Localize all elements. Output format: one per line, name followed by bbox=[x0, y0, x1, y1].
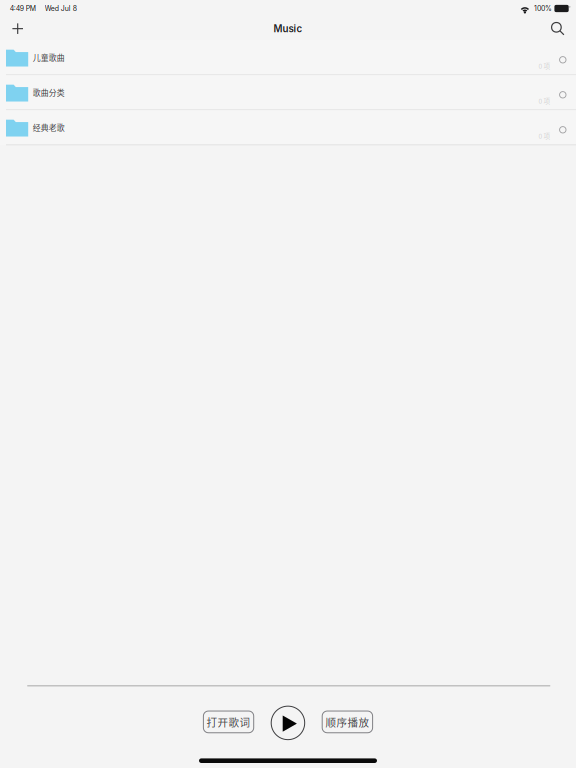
staticText: 0 项 bbox=[539, 96, 551, 106]
button[interactable]: 歌曲分类 bbox=[0, 75, 576, 109]
staticText: 100% bbox=[534, 4, 552, 13]
staticText: 0 项 bbox=[539, 131, 551, 141]
button[interactable]: 打开歌词 bbox=[203, 711, 254, 733]
staticText: 打开歌词 bbox=[207, 714, 251, 730]
staticText: 0 项 bbox=[539, 61, 551, 71]
button[interactable]: 儿童歌曲 bbox=[0, 40, 576, 74]
button[interactable]: Play bbox=[254, 705, 321, 739]
button[interactable]: Search bbox=[544, 15, 571, 42]
staticText: 经典老歌 bbox=[33, 122, 65, 133]
button[interactable]: Add bbox=[4, 15, 31, 42]
staticText: 儿童歌曲 bbox=[33, 52, 65, 63]
staticText: 4:49 PM bbox=[10, 4, 36, 13]
staticText: 顺序播放 bbox=[325, 714, 369, 730]
staticText: 歌曲分类 bbox=[33, 87, 65, 98]
button[interactable]: 顺序播放 bbox=[322, 711, 373, 733]
staticText: Music bbox=[273, 23, 302, 35]
staticText: Wed Jul 8 bbox=[45, 4, 77, 13]
button[interactable]: 经典老歌 bbox=[0, 110, 576, 144]
